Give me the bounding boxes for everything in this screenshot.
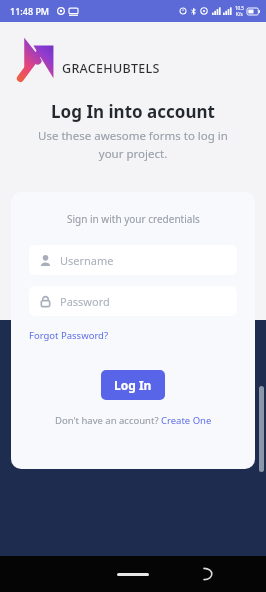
button[interactable]: Forgot Password?	[29, 329, 109, 342]
staticText: Don't have an account?	[55, 414, 161, 427]
button[interactable]: Create One	[161, 414, 212, 427]
staticText: 10.5	[235, 5, 244, 11]
button[interactable]: Log In	[101, 370, 165, 400]
staticText: Password	[60, 294, 110, 309]
staticText: Log In	[114, 377, 152, 393]
staticText: Log In into account	[0, 100, 266, 123]
staticText: K/s	[236, 11, 243, 17]
staticText: 11:48 PM	[10, 5, 50, 17]
button[interactable]: Back	[198, 564, 218, 584]
button[interactable]: Password	[29, 286, 237, 316]
staticText: Username	[60, 253, 114, 268]
staticText: Sign in with your credentials	[67, 212, 200, 226]
button[interactable]: Username	[29, 245, 237, 275]
button[interactable]: Home	[117, 573, 149, 576]
staticText: GRACEHUBTELS	[62, 60, 160, 77]
staticText: Use these awesome forms to log in your p…	[26, 128, 240, 161]
